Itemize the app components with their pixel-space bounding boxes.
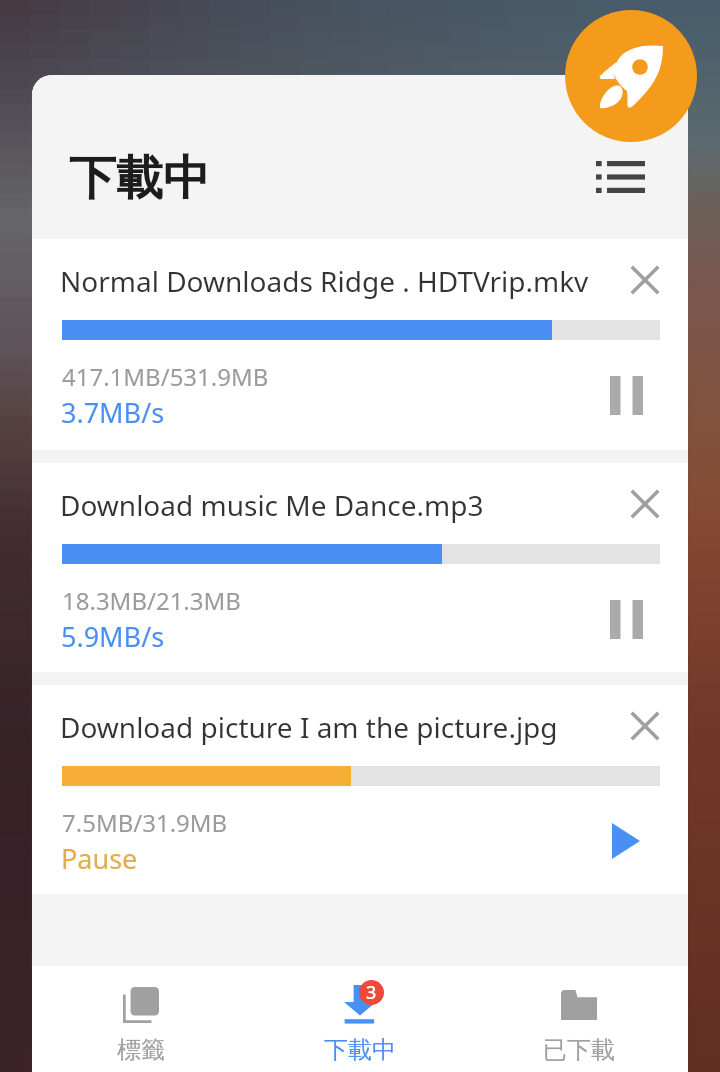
button[interactable]: 3	[250, 966, 469, 1072]
button[interactable]: Resume download	[595, 810, 657, 872]
button[interactable]: Cancel download	[615, 474, 675, 534]
button[interactable]: List view	[588, 145, 652, 209]
button[interactable]: Cancel download	[615, 696, 675, 756]
staticText: 5.9MB/s	[61, 618, 165, 655]
staticText: 下載中	[69, 149, 210, 208]
staticText: Download music Me Dance.mp3	[60, 486, 484, 524]
button[interactable]: Boost download	[565, 10, 697, 142]
button[interactable]: 已下載	[469, 966, 688, 1072]
staticText: 下載中	[324, 1035, 396, 1065]
button[interactable]: Cancel download	[615, 250, 675, 310]
staticText: 417.1MB/531.9MB	[62, 360, 269, 393]
staticText: 3	[366, 980, 377, 1005]
button[interactable]: 標籤	[32, 966, 250, 1072]
staticText: 18.3MB/21.3MB	[62, 584, 241, 617]
staticText: Download picture I am the picture.jpg	[60, 708, 558, 746]
staticText: Normal Downloads Ridge . HDTVrip.mkv	[60, 262, 589, 300]
staticText: 7.5MB/31.9MB	[62, 806, 228, 839]
staticText: 標籤	[117, 1035, 165, 1065]
button[interactable]: Download music Me Dance.mp3	[32, 463, 688, 672]
button[interactable]: Pause download	[595, 588, 657, 650]
staticText: 3.7MB/s	[61, 394, 165, 431]
button[interactable]: Normal Downloads Ridge . HDTVrip.mkv	[32, 239, 688, 450]
staticText: Pause	[61, 840, 138, 877]
staticText: 已下載	[543, 1035, 615, 1065]
button[interactable]: Download picture I am the picture.jpg	[32, 685, 688, 894]
button[interactable]: Pause download	[595, 364, 657, 426]
